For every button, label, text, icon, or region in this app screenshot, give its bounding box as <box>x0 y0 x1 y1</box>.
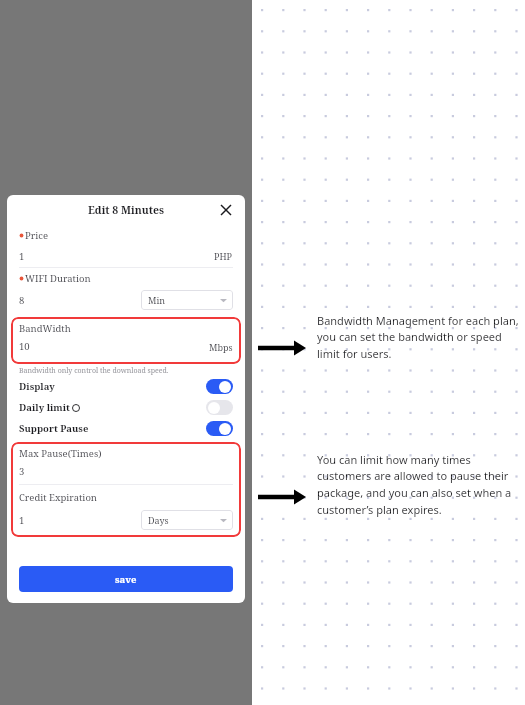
staticText: 8 <box>19 294 25 307</box>
button[interactable]: Support Pause <box>7 418 245 439</box>
staticText: Min <box>148 294 166 306</box>
staticText: Max Pause(Times) <box>19 447 102 460</box>
button[interactable]: Min <box>141 290 233 310</box>
staticText: PHP <box>214 250 233 262</box>
button[interactable]: 1₱ <box>10 179 242 216</box>
staticText: WIFI Duration <box>25 272 91 285</box>
staticText: Price <box>25 229 49 242</box>
staticText: Support Pause <box>19 422 89 435</box>
staticText: 1₱ <box>26 185 37 197</box>
staticText: BandWidth <box>19 322 71 335</box>
button[interactable]: Days <box>141 510 233 530</box>
staticText: 1 <box>19 250 25 263</box>
staticText: Display <box>19 380 55 393</box>
staticText: Days <box>148 514 169 526</box>
staticText: You can limit how many times customers a… <box>317 452 522 517</box>
button[interactable]: Edit item <box>162 190 178 206</box>
staticText: 10 <box>19 340 30 353</box>
button[interactable]: save <box>19 566 233 592</box>
staticText: Mbps <box>209 341 233 353</box>
staticText: 3 <box>19 465 25 478</box>
staticText: save <box>115 573 137 586</box>
staticText: Daily limit <box>19 401 70 414</box>
button[interactable]: Close <box>216 200 236 220</box>
staticText: Credit Expiration <box>19 491 97 504</box>
button[interactable]: Display <box>7 376 245 397</box>
staticText: Bandwidth Management for each plan, you … <box>317 313 525 361</box>
staticText: Bandwidth only control the download spee… <box>19 366 169 376</box>
staticText: 9 Minutes /Support Pause/10 <box>26 199 154 211</box>
button[interactable]: Daily limit <box>7 397 245 418</box>
staticText: Edit 8 Minutes <box>88 203 165 217</box>
staticText: 1 <box>19 514 25 527</box>
